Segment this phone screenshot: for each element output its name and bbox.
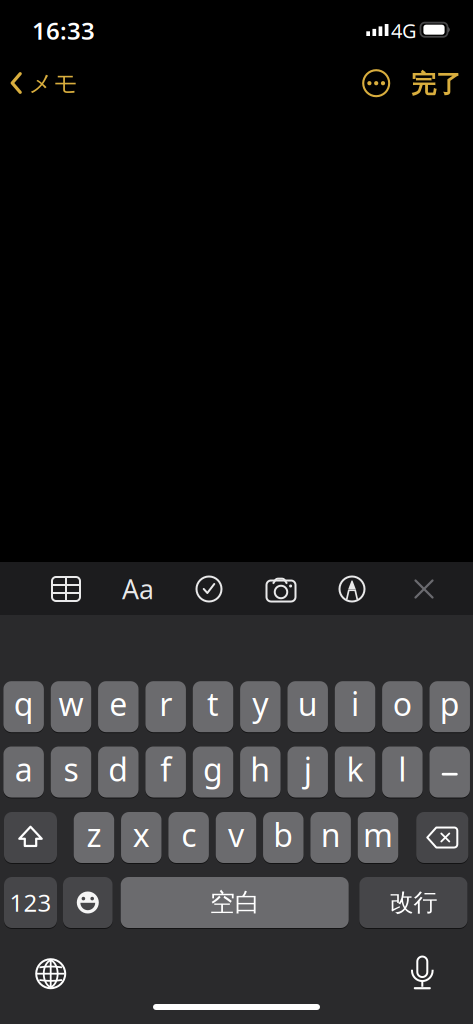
- button[interactable]: n: [310, 811, 351, 864]
- staticText: t: [207, 682, 219, 725]
- staticText: w: [58, 682, 83, 725]
- staticText: f: [160, 748, 171, 790]
- button[interactable]: p: [429, 680, 470, 733]
- staticText: 123: [9, 887, 51, 918]
- button[interactable]: 次のキーボード: [31, 954, 71, 994]
- button[interactable]: l: [382, 745, 423, 798]
- button[interactable]: マークアップ: [330, 567, 374, 611]
- staticText: y: [252, 682, 268, 725]
- button[interactable]: その他: [361, 68, 391, 98]
- staticText: k: [346, 748, 363, 790]
- staticText: a: [15, 748, 33, 790]
- staticText: b: [273, 813, 293, 856]
- staticText: d: [108, 748, 128, 790]
- button[interactable]: 絵文字: [63, 876, 113, 929]
- staticText: Aa: [122, 571, 154, 607]
- button[interactable]: j: [287, 745, 328, 798]
- staticText: m: [363, 813, 393, 856]
- button[interactable]: 書式: [116, 567, 160, 611]
- staticText: o: [393, 682, 412, 725]
- staticText: e: [109, 682, 127, 725]
- staticText: v: [228, 813, 244, 856]
- button[interactable]: v: [216, 811, 256, 864]
- staticText: i: [351, 682, 359, 725]
- staticText: p: [440, 682, 460, 725]
- button[interactable]: x: [121, 811, 161, 864]
- button[interactable]: e: [98, 680, 139, 733]
- button[interactable]: h: [240, 745, 281, 798]
- button[interactable]: 改行: [359, 876, 467, 929]
- button[interactable]: m: [358, 811, 398, 864]
- staticText: l: [398, 748, 406, 790]
- staticText: メモ: [29, 69, 79, 98]
- staticText: 4G: [391, 17, 417, 44]
- staticText: 16:33: [32, 15, 95, 46]
- button[interactable]: q: [3, 680, 44, 733]
- button[interactable]: u: [287, 680, 328, 733]
- staticText: 改行: [389, 888, 437, 917]
- button[interactable]: d: [98, 745, 139, 798]
- button[interactable]: b: [263, 811, 304, 864]
- button[interactable]: チェックリスト: [187, 567, 231, 611]
- staticText: h: [250, 748, 270, 790]
- button[interactable]: o: [382, 680, 423, 733]
- button[interactable]: i: [335, 680, 375, 733]
- button[interactable]: 空白: [121, 876, 349, 929]
- button[interactable]: y: [240, 680, 281, 733]
- button[interactable]: t: [193, 680, 233, 733]
- staticText: u: [298, 682, 318, 725]
- staticText: r: [159, 682, 172, 725]
- staticText: 完了: [411, 68, 461, 99]
- button[interactable]: c: [168, 811, 209, 864]
- staticText: z: [86, 813, 101, 856]
- staticText: c: [181, 813, 196, 856]
- button[interactable]: g: [193, 745, 233, 798]
- button[interactable]: 表を挿入: [44, 567, 88, 611]
- button[interactable]: r: [145, 680, 186, 733]
- staticText: 空白: [210, 887, 260, 918]
- button[interactable]: s: [51, 745, 91, 798]
- button[interactable]: 閉じる: [402, 567, 446, 611]
- button[interactable]: カメラ: [259, 567, 303, 611]
- button[interactable]: a: [3, 745, 44, 798]
- button[interactable]: シフト: [4, 811, 57, 864]
- staticText: n: [321, 813, 341, 856]
- staticText: s: [63, 748, 78, 790]
- staticText: g: [203, 748, 223, 790]
- button[interactable]: 音声入力: [402, 953, 442, 993]
- staticText: x: [133, 813, 150, 856]
- button[interactable]: f: [145, 745, 186, 798]
- staticText: j: [304, 748, 312, 790]
- button[interactable]: メモに戻る: [0, 60, 86, 106]
- button[interactable]: 削除: [416, 811, 468, 864]
- staticText: q: [14, 682, 34, 725]
- button[interactable]: k: [335, 745, 375, 798]
- button[interactable]: z: [74, 811, 114, 864]
- button[interactable]: w: [51, 680, 91, 733]
- button[interactable]: ー: [429, 745, 470, 798]
- button[interactable]: 123: [4, 876, 57, 929]
- button[interactable]: 完了: [411, 68, 461, 99]
